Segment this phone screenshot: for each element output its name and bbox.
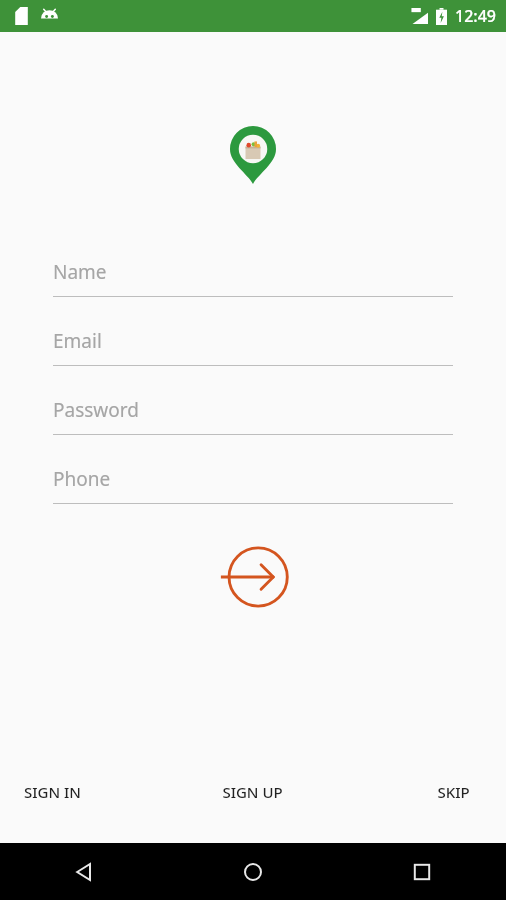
button[interactable]: Phone xyxy=(53,466,453,504)
button[interactable]: SIGN UP xyxy=(168,770,337,814)
button[interactable]: Email xyxy=(53,328,453,366)
staticText: Name xyxy=(53,259,107,285)
staticText: SKIP xyxy=(437,782,470,802)
staticText: Email xyxy=(53,328,102,354)
button[interactable]: Name xyxy=(53,259,453,297)
button[interactable]: Home xyxy=(168,843,337,900)
button[interactable]: Password xyxy=(53,397,453,435)
staticText: SIGN IN xyxy=(24,782,81,802)
button[interactable]: Recent apps xyxy=(337,843,506,900)
button[interactable]: Submit xyxy=(210,545,296,609)
button[interactable]: Back xyxy=(0,843,168,900)
staticText: SIGN UP xyxy=(222,782,283,802)
button[interactable]: SIGN IN xyxy=(0,770,168,814)
staticText: Password xyxy=(53,397,139,423)
button[interactable]: SKIP xyxy=(337,770,506,814)
staticText: 12:49 xyxy=(455,5,496,27)
staticText: Phone xyxy=(53,466,111,492)
